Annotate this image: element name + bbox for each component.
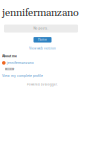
staticText: jennifermanzano (2, 6, 79, 19)
staticText: Follow (5, 67, 14, 71)
button[interactable]: jennifermanzano (2, 61, 34, 65)
staticText: Home (38, 38, 47, 41)
staticText: About me (2, 54, 17, 58)
staticText: View web version (29, 46, 56, 50)
staticText: Powered by Blogger. (27, 83, 58, 86)
button[interactable]: Follow (5, 67, 14, 71)
button[interactable]: View web version (29, 46, 56, 50)
staticText: View my complete profile (2, 74, 43, 78)
staticText: jennifermanzano (7, 61, 34, 65)
staticText: No posts. (33, 27, 48, 30)
button[interactable]: View my complete profile (2, 74, 43, 78)
button[interactable]: Home (33, 37, 51, 42)
